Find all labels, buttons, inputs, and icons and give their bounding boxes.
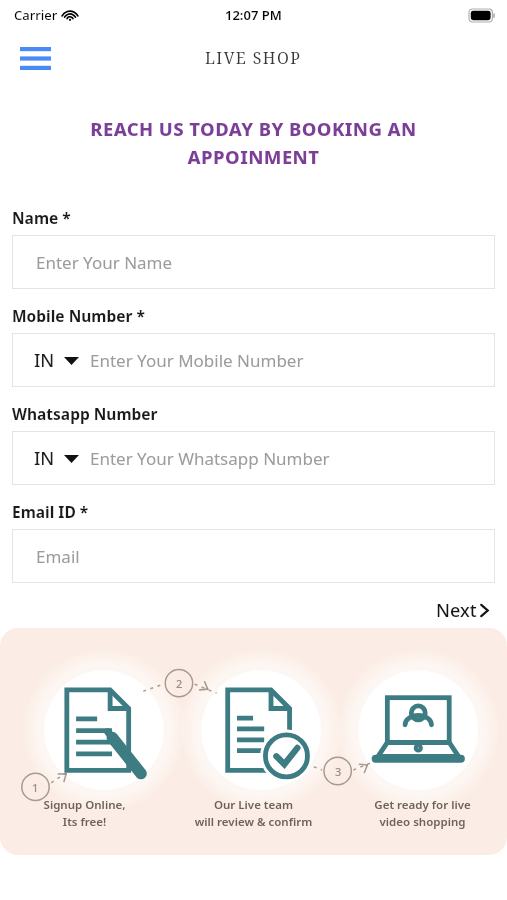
staticText: Enter Your Name — [36, 251, 173, 274]
staticText: LIVE SHOP — [205, 47, 302, 69]
button[interactable]: Enter Your Name — [12, 235, 495, 289]
staticText: Whatsapp Number — [12, 403, 158, 424]
staticText: 3 — [335, 764, 342, 779]
button[interactable]: Next — [430, 594, 495, 627]
staticText: Name * — [12, 207, 71, 228]
staticText: Email — [36, 545, 80, 568]
button[interactable]: Open navigation menu — [12, 35, 58, 81]
staticText: Carrier — [14, 6, 58, 24]
button[interactable]: Email — [12, 529, 495, 583]
button[interactable]: IN — [12, 431, 495, 485]
staticText: REACH US TODAY BY BOOKING AN APPOINMENT — [40, 116, 467, 169]
staticText: Mobile Number * — [12, 305, 145, 326]
button[interactable]: IN — [12, 333, 495, 387]
staticText: 1 — [32, 780, 39, 795]
staticText: Get ready for live video shopping — [338, 797, 507, 829]
staticText: Enter Your Whatsapp Number — [90, 447, 330, 470]
staticText: 2 — [176, 676, 183, 691]
staticText: IN — [34, 348, 55, 373]
staticText: 12:07 PM — [225, 6, 282, 24]
staticText: IN — [34, 446, 55, 471]
staticText: Next — [436, 598, 477, 623]
staticText: Our Live team will review & confirm — [169, 797, 338, 829]
staticText: Email ID * — [12, 501, 89, 522]
staticText: Signup Online, Its free! — [0, 797, 169, 829]
staticText: Enter Your Mobile Number — [90, 349, 304, 372]
